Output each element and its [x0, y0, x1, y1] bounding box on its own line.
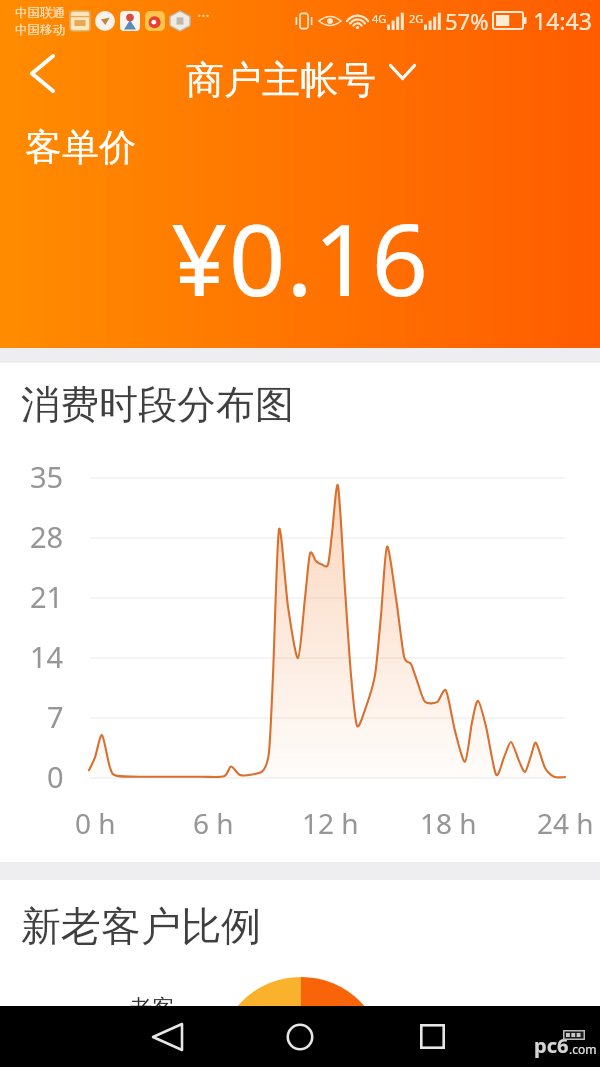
- staticText: 4G: [372, 11, 387, 26]
- staticText: 新老客户比例: [21, 901, 261, 951]
- staticText: 商户主帐号: [186, 56, 376, 104]
- staticText: 0 h: [75, 804, 116, 842]
- button[interactable]: 新老客户比例: [0, 880, 600, 1067]
- staticText: 21: [30, 577, 64, 616]
- staticText: 客单价: [25, 124, 136, 171]
- button[interactable]: 消费时段分布图: [0, 363, 600, 862]
- staticText: 18 h: [420, 804, 477, 842]
- staticText: 35: [30, 457, 64, 496]
- staticText: 14: [30, 637, 64, 676]
- staticText: ¥0.16: [171, 190, 430, 325]
- staticText: 老客: [129, 994, 175, 1023]
- staticText: 中国联通: [15, 5, 65, 21]
- staticText: 中国移动: [15, 22, 65, 38]
- staticText: 消费时段分布图: [21, 380, 294, 429]
- staticText: 6 h: [193, 804, 234, 842]
- button[interactable]: 商户主帐号: [186, 56, 416, 104]
- staticText: 14:43: [533, 5, 592, 36]
- staticText: 2G: [409, 11, 424, 26]
- staticText: 24 h: [537, 804, 594, 842]
- staticText: 28: [30, 517, 64, 556]
- staticText: 0: [47, 757, 64, 796]
- button[interactable]: Back: [8, 44, 76, 102]
- button[interactable]: Home: [255, 1006, 345, 1067]
- staticText: ···: [197, 5, 210, 27]
- staticText: 7: [47, 697, 64, 736]
- button[interactable]: Recents: [387, 1006, 477, 1067]
- button[interactable]: Back: [122, 1006, 212, 1067]
- staticText: .com: [569, 1041, 597, 1057]
- staticText: 57%: [445, 6, 489, 36]
- staticText: pc6: [534, 1032, 569, 1059]
- staticText: 12 h: [302, 804, 359, 842]
